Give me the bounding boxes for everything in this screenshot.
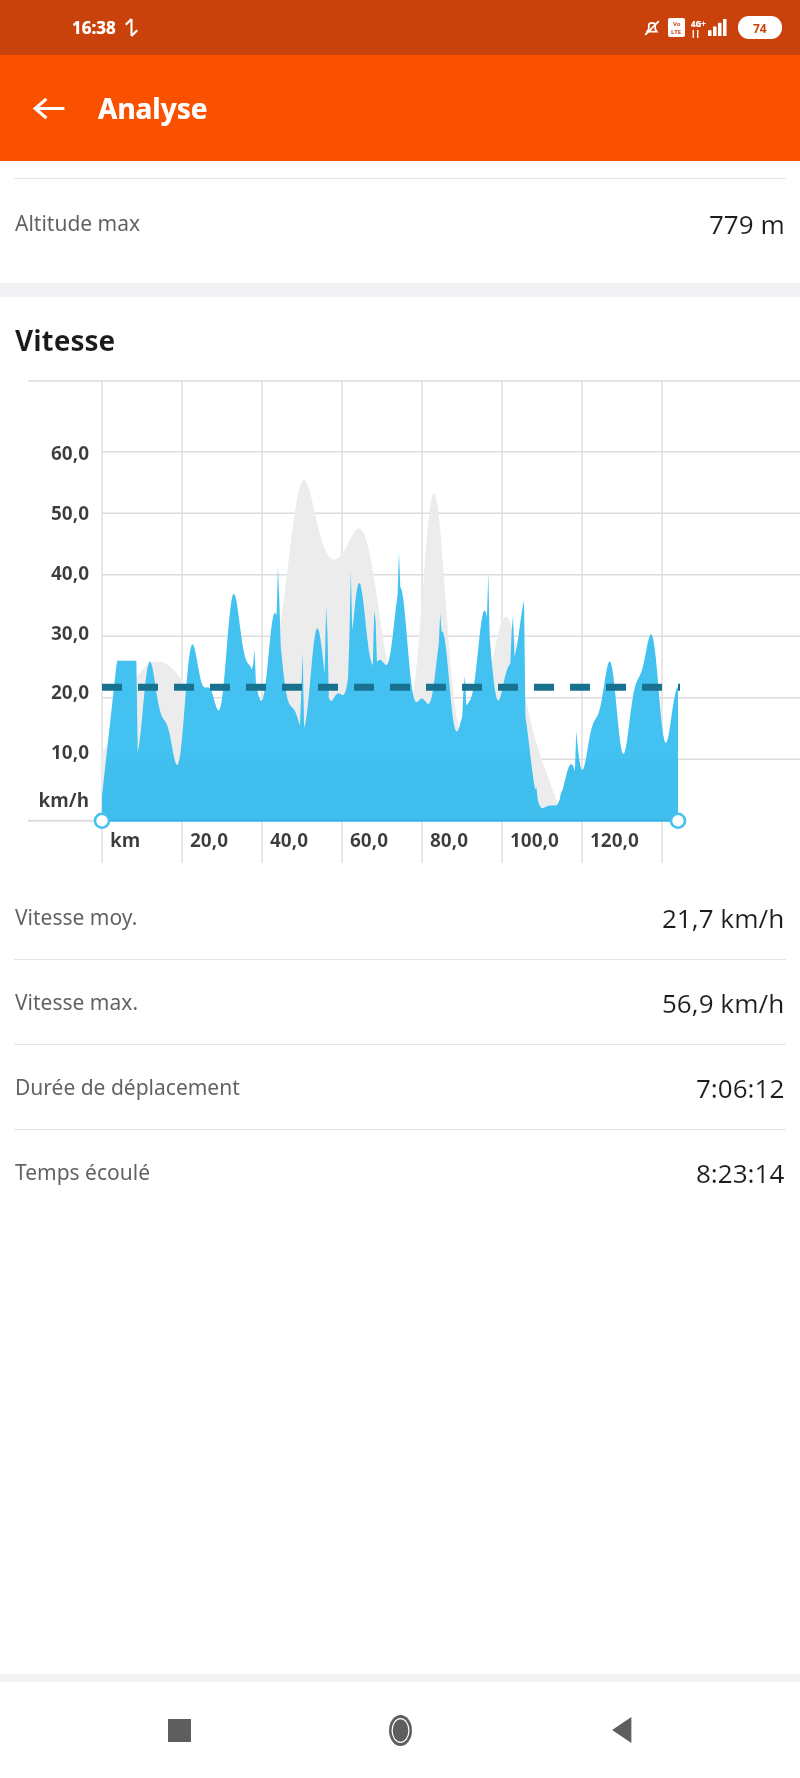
staticText: km/h <box>0 787 89 813</box>
staticText: Analyse <box>98 89 208 127</box>
staticText: Vitesse <box>15 321 116 359</box>
button[interactable]: Home <box>357 1687 443 1773</box>
staticText: Vitesse moy. <box>15 903 138 932</box>
staticText: 56,9 km/h <box>662 985 785 1020</box>
staticText: 30,0 <box>0 620 89 646</box>
staticText: Vitesse max. <box>15 988 139 1017</box>
staticText: 80,0 <box>430 827 469 853</box>
button[interactable]: Altitude max <box>0 179 800 267</box>
staticText: 40,0 <box>0 560 89 586</box>
staticText: LTE <box>671 28 682 36</box>
staticText: 40,0 <box>270 827 309 853</box>
staticText: 16:38 <box>72 16 116 39</box>
staticText: Vo <box>673 20 681 28</box>
button[interactable]: Back <box>579 1687 665 1773</box>
staticText: 779 m <box>709 206 785 241</box>
staticText: 74 <box>753 20 767 36</box>
staticText: km <box>110 827 141 853</box>
button[interactable]: Durée de déplacement <box>0 1044 800 1129</box>
staticText: Altitude max <box>15 209 141 238</box>
staticText: 120,0 <box>590 827 639 853</box>
button[interactable]: Vitesse max. <box>0 959 800 1044</box>
button[interactable]: Temps écoulé <box>0 1129 800 1214</box>
staticText: 20,0 <box>190 827 229 853</box>
staticText: 20,0 <box>0 679 89 705</box>
staticText: 50,0 <box>0 500 89 526</box>
button[interactable]: Vitesse moy. <box>0 875 800 959</box>
staticText: 10,0 <box>0 739 89 765</box>
staticText: Durée de déplacement <box>15 1073 240 1102</box>
staticText: 8:23:14 <box>696 1155 785 1190</box>
staticText: 21,7 km/h <box>662 900 785 935</box>
staticText: Temps écoulé <box>15 1158 150 1187</box>
staticText: 7:06:12 <box>696 1070 785 1105</box>
staticText: 60,0 <box>0 440 89 466</box>
staticText: 4G+ <box>691 18 706 29</box>
staticText: 60,0 <box>350 827 389 853</box>
button[interactable]: Recent apps <box>136 1687 222 1773</box>
button[interactable]: Back <box>18 77 80 139</box>
staticText: 100,0 <box>510 827 559 853</box>
